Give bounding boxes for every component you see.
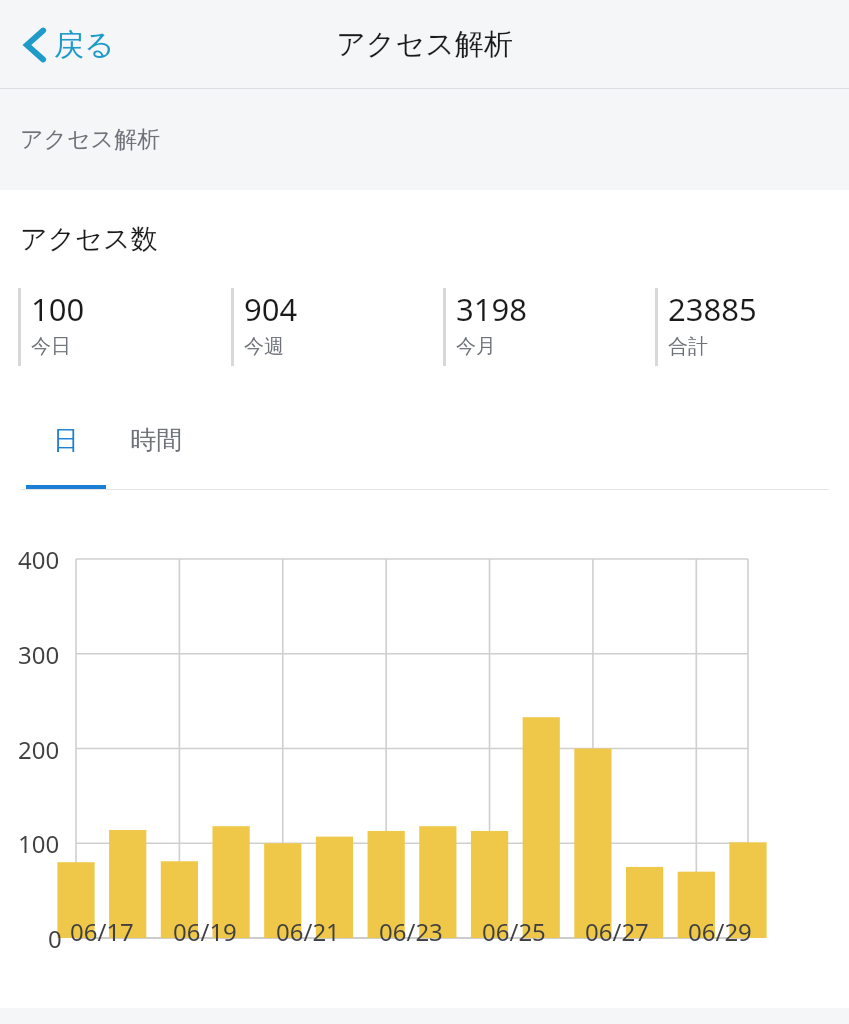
- staticText: 06/23: [379, 915, 443, 948]
- staticText: 今月: [456, 334, 496, 359]
- staticText: 400: [18, 543, 60, 576]
- staticText: アクセス解析: [336, 26, 513, 63]
- staticText: 06/17: [70, 915, 134, 948]
- staticText: 3198: [456, 288, 527, 330]
- staticText: 06/27: [585, 915, 649, 948]
- staticText: 0: [48, 922, 62, 955]
- staticText: アクセス解析: [20, 125, 161, 154]
- staticText: 200: [18, 733, 60, 766]
- button[interactable]: 日: [26, 418, 106, 490]
- staticText: 100: [18, 827, 60, 860]
- staticText: 時間: [130, 424, 182, 457]
- staticText: アクセス数: [20, 222, 158, 256]
- staticText: 06/29: [688, 915, 752, 948]
- staticText: 23885: [668, 288, 757, 330]
- staticText: 904: [244, 288, 298, 330]
- staticText: 戻る: [54, 26, 115, 64]
- staticText: 今週: [244, 334, 284, 359]
- button[interactable]: 戻る: [12, 17, 121, 73]
- staticText: 100: [31, 288, 85, 330]
- staticText: 06/21: [276, 915, 340, 948]
- staticText: 合計: [668, 334, 708, 359]
- staticText: 今日: [31, 334, 71, 359]
- staticText: 06/25: [482, 915, 546, 948]
- staticText: 300: [18, 638, 60, 671]
- button[interactable]: 時間: [106, 418, 206, 490]
- staticText: 06/19: [173, 915, 237, 948]
- staticText: 日: [53, 424, 79, 457]
